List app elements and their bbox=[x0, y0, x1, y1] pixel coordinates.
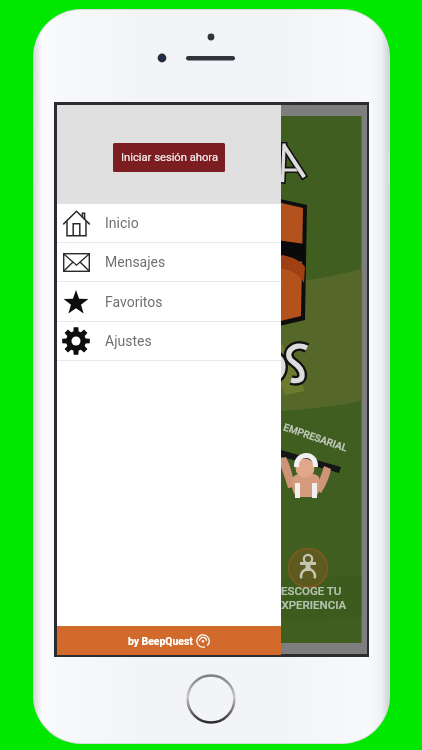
other: BeepQuest bbox=[196, 634, 210, 648]
button[interactable]: Favoritos bbox=[57, 283, 281, 323]
staticText: ESCOGE TU bbox=[281, 584, 342, 597]
staticText: Mensajes bbox=[105, 254, 166, 270]
button[interactable]: Inicio bbox=[57, 204, 281, 243]
staticText: EMPRESARIAL bbox=[282, 421, 349, 455]
button[interactable]: by BeepQuest bbox=[57, 626, 281, 655]
button[interactable]: Ajustes bbox=[57, 322, 281, 362]
staticText: Iniciar sesión ahora bbox=[121, 151, 218, 164]
staticText: by BeepQuest bbox=[128, 635, 193, 647]
staticText: EXPERIENCIA bbox=[275, 598, 347, 611]
button[interactable]: Iniciar sesión ahora bbox=[113, 143, 225, 172]
button[interactable]: Mensajes bbox=[57, 243, 281, 283]
staticText: Favoritos bbox=[105, 294, 163, 310]
staticText: Ajustes bbox=[105, 333, 152, 349]
staticText: Inicio bbox=[105, 215, 139, 231]
